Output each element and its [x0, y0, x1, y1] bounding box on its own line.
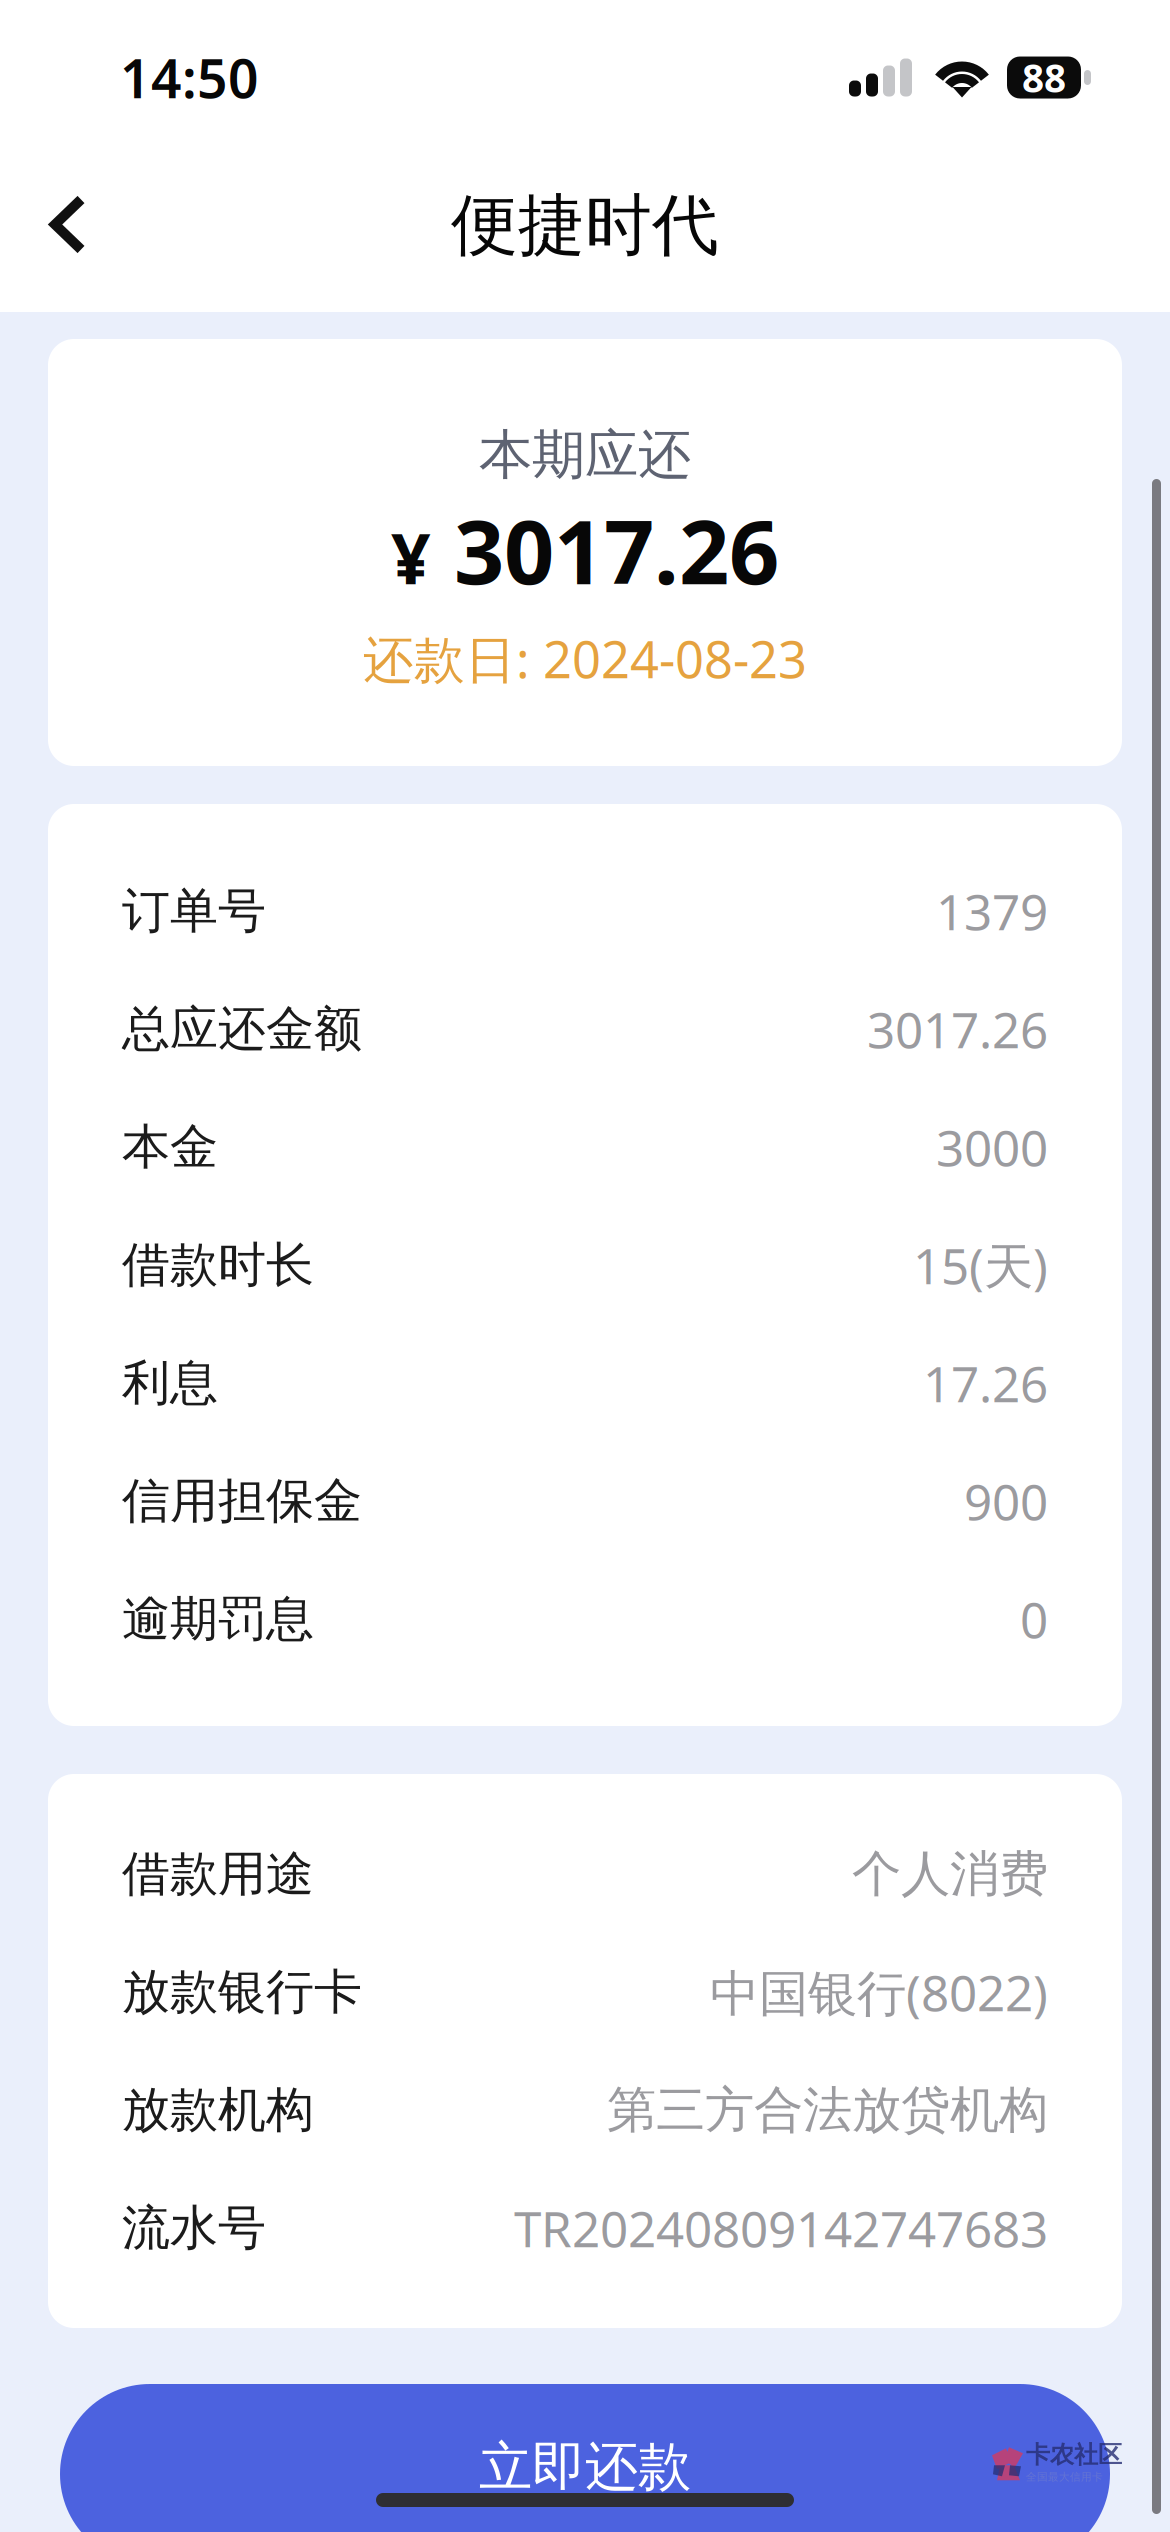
- staticText: 中国银行(8022): [710, 1959, 1048, 2025]
- staticText: 信用担保金: [122, 1471, 362, 1530]
- staticText: 88: [1022, 52, 1066, 103]
- staticText: 订单号: [122, 881, 266, 940]
- staticText: 900: [964, 1468, 1048, 1534]
- staticText: 15(天): [913, 1232, 1048, 1298]
- staticText: 第三方合法放贷机构: [607, 2080, 1048, 2140]
- staticText: 3017.26: [867, 996, 1048, 1062]
- staticText: 流水号: [122, 2198, 266, 2257]
- staticText: TR20240809142747683: [514, 2195, 1048, 2261]
- staticText: ¥ 3017.26: [391, 492, 779, 608]
- staticText: 还款日: 2024-08-23: [363, 625, 807, 692]
- button[interactable]: 立即还款: [60, 2384, 1110, 2532]
- staticText: 卡农社区: [1026, 2440, 1122, 2469]
- button[interactable]: Back: [0, 169, 120, 297]
- staticText: 3000: [936, 1114, 1048, 1180]
- staticText: 便捷时代: [451, 185, 719, 266]
- staticText: 本期应还: [479, 422, 691, 488]
- staticText: 放款机构: [122, 2080, 314, 2139]
- staticText: 全国最大信用卡: [1026, 2470, 1103, 2484]
- staticText: 利息: [122, 1353, 218, 1412]
- staticText: 个人消费: [852, 1844, 1048, 1904]
- staticText: 本金: [122, 1117, 218, 1176]
- staticText: 借款用途: [122, 1844, 314, 1903]
- staticText: 立即还款: [479, 2434, 691, 2500]
- staticText: 0: [1020, 1586, 1048, 1652]
- staticText: 总应还金额: [122, 999, 362, 1058]
- staticText: 逾期罚息: [122, 1589, 314, 1648]
- staticText: 14:50: [120, 42, 259, 113]
- staticText: 借款时长: [122, 1235, 314, 1294]
- staticText: 17.26: [923, 1350, 1048, 1416]
- staticText: 1379: [936, 878, 1048, 944]
- staticText: 放款银行卡: [122, 1962, 362, 2021]
